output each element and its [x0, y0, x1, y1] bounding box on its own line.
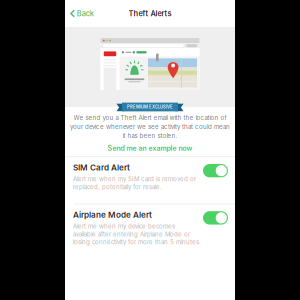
button[interactable]: Airplane Mode Alert [65, 204, 235, 255]
staticText: We send you a Theft Alert email with the… [73, 114, 226, 121]
button[interactable]: SIM Card Alert [65, 157, 235, 204]
button[interactable]: Send me an example now [65, 143, 235, 153]
staticText: it has been stolen. [122, 132, 177, 139]
staticText: your device whenever we see activity tha… [70, 123, 230, 130]
staticText: SIM Card Alert [73, 163, 130, 172]
staticText: PREMIUM EXCLUSIVE [127, 104, 173, 109]
staticText: Airplane Mode Alert [73, 210, 152, 220]
staticText: Send me an example now [107, 144, 192, 152]
staticText: Alert me when my device becomes [73, 223, 175, 230]
staticText: available after entering Airplane Mode o… [73, 231, 190, 238]
staticText: Back [77, 9, 94, 18]
button[interactable]: Back [65, 4, 100, 23]
staticText: Alert me when my SIM card is removed or [73, 175, 196, 183]
staticText: replaced, potentially for resale. [73, 183, 162, 191]
staticText: Theft Alerts [128, 9, 171, 18]
staticText: losing connectivity for more than 5 minu… [73, 238, 201, 246]
